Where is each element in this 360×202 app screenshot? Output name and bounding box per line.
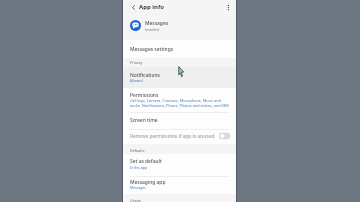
button[interactable] <box>123 67 236 88</box>
staticText: Installed <box>145 27 159 32</box>
staticText: Set as default <box>130 158 162 165</box>
staticText: Defaults <box>130 148 145 153</box>
staticText: Notifications <box>130 72 160 79</box>
staticText: In this app <box>130 165 147 170</box>
staticText: Call logs, Camera, Contacts, Microphone,… <box>130 98 232 108</box>
staticText: Permissions <box>130 92 159 99</box>
staticText: Messages settings <box>130 46 174 53</box>
button[interactable] <box>123 40 236 58</box>
staticText: Allowed <box>130 78 143 83</box>
button[interactable] <box>123 113 236 129</box>
button[interactable] <box>123 154 236 177</box>
staticText: App info <box>139 3 165 11</box>
staticText: Remove permissions if app is unused <box>130 133 215 140</box>
staticText: Usage <box>130 198 141 202</box>
button[interactable] <box>123 177 236 194</box>
button[interactable]: Navigate up <box>129 3 138 12</box>
staticText: Screen time <box>130 117 158 124</box>
staticText: Messaging app <box>130 179 166 186</box>
button[interactable] <box>123 129 236 144</box>
staticText: Messages <box>130 185 146 190</box>
staticText: Messages <box>145 20 169 27</box>
button[interactable] <box>123 15 236 36</box>
button[interactable] <box>123 87 236 112</box>
button[interactable]: More options <box>222 1 234 13</box>
staticText: Privacy <box>130 60 143 65</box>
